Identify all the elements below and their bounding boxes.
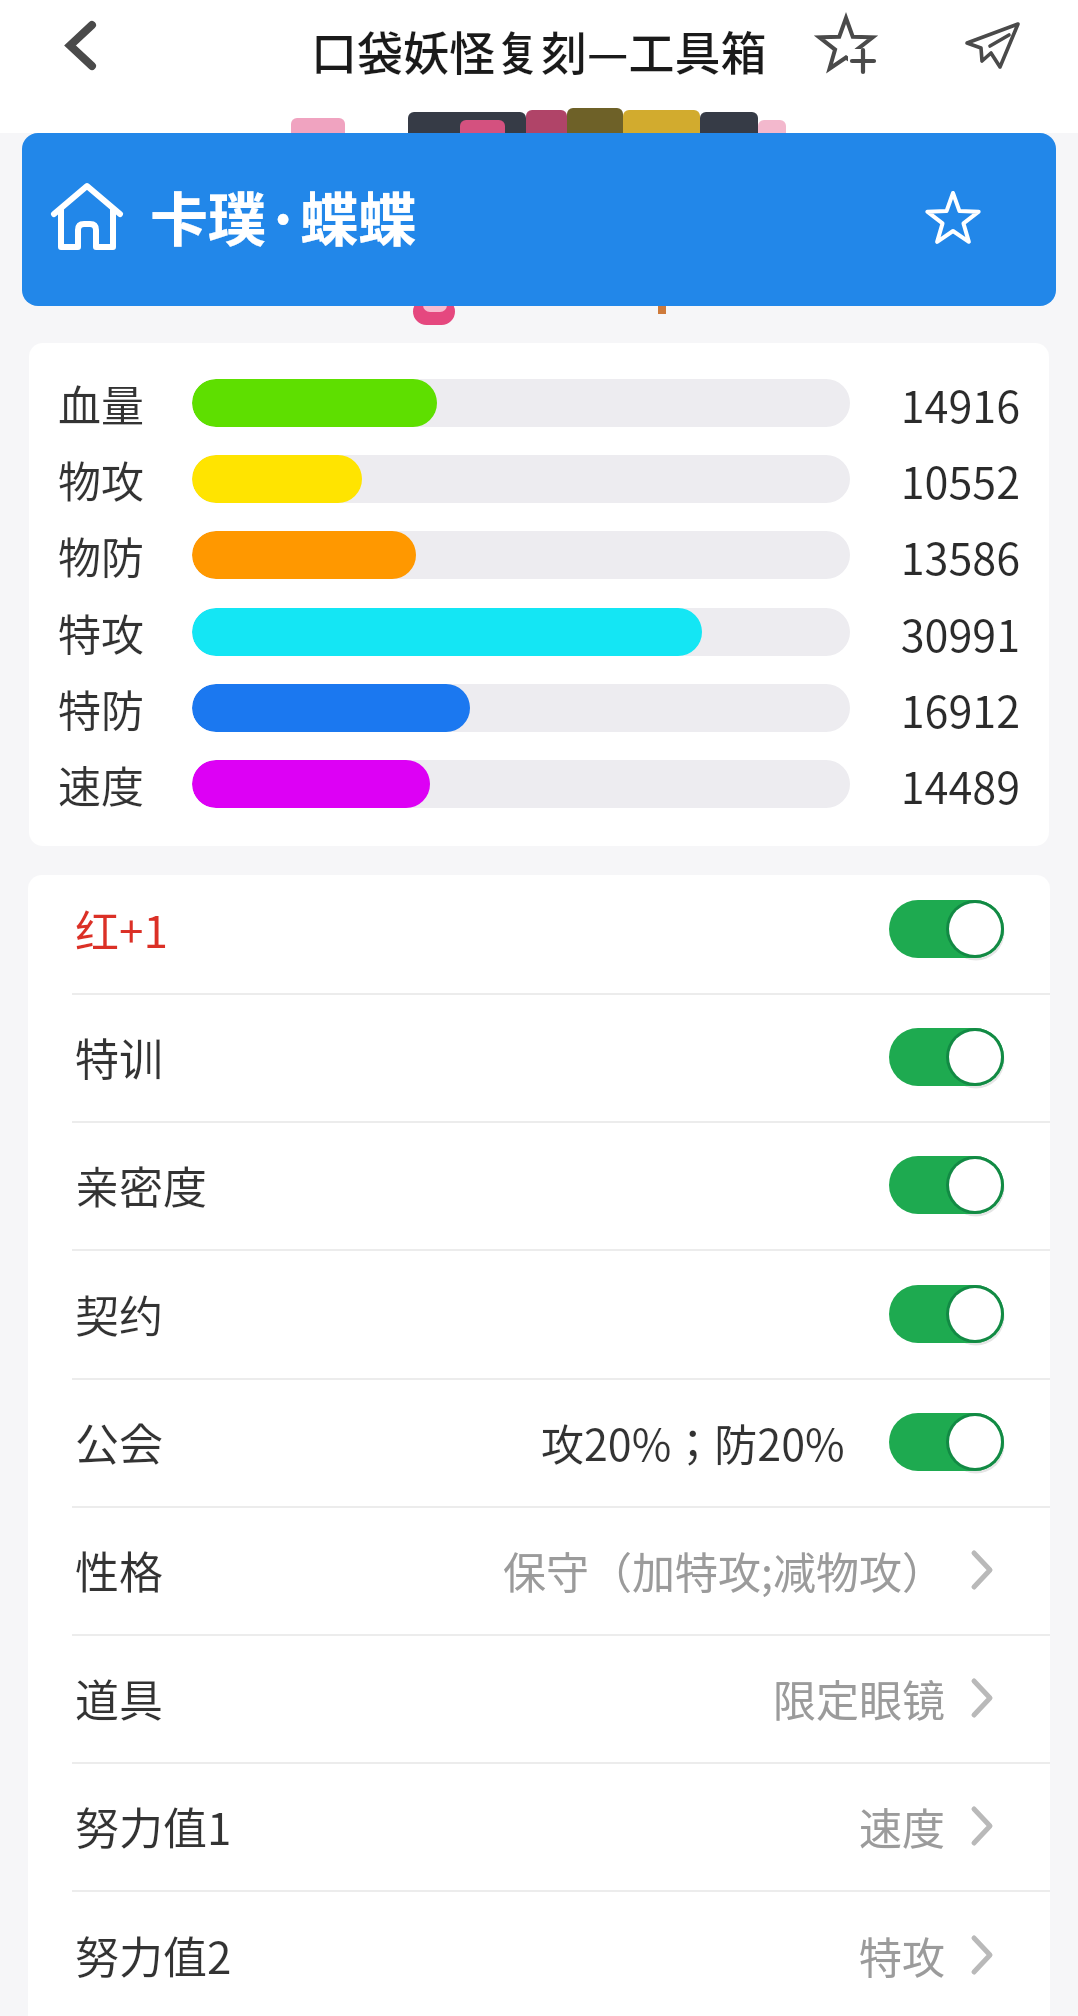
staticText: 14489 — [789, 754, 1020, 816]
staticText: 特防 — [58, 677, 144, 739]
button[interactable]: 契约 — [28, 1250, 1050, 1378]
button[interactable] — [889, 1156, 1004, 1214]
staticText: 13586 — [789, 525, 1020, 587]
staticText: 契约 — [75, 1282, 163, 1346]
staticText: 10552 — [789, 449, 1020, 511]
button[interactable] — [946, 4, 1036, 88]
staticText: 性格 — [75, 1538, 163, 1602]
staticText: 努力值2 — [75, 1923, 232, 1987]
staticText: 卡璞·蝶蝶 — [150, 174, 417, 258]
staticText: 14916 — [789, 373, 1020, 435]
button[interactable] — [808, 8, 908, 92]
staticText: 16912 — [789, 678, 1020, 740]
button[interactable] — [889, 1028, 1004, 1086]
button[interactable]: 性格 — [28, 1506, 1050, 1634]
staticText: 特训 — [75, 1025, 163, 1089]
button[interactable]: 努力值2 — [28, 1891, 1050, 2016]
staticText: 红+1 — [75, 897, 168, 961]
staticText: 速度 — [58, 753, 144, 815]
button[interactable] — [889, 900, 1004, 958]
button[interactable]: 亲密度 — [28, 1121, 1050, 1249]
staticText: 速度 — [859, 1795, 945, 1857]
staticText: 特攻 — [859, 1924, 945, 1986]
staticText: 30991 — [789, 602, 1020, 664]
button[interactable]: 特训 — [28, 993, 1050, 1121]
staticText: 公会 — [75, 1410, 163, 1474]
button[interactable]: 公会 — [28, 1378, 1050, 1506]
staticText: 亲密度 — [75, 1153, 207, 1217]
button[interactable]: 红+1 — [28, 875, 1050, 993]
staticText: 特攻 — [58, 601, 144, 663]
button[interactable] — [889, 1285, 1004, 1343]
staticText: 攻20%；防20% — [541, 1411, 845, 1473]
button[interactable] — [46, 10, 116, 86]
staticText: 口袋妖怪复刻—工具箱 — [311, 17, 767, 84]
staticText: 限定眼镜 — [773, 1667, 945, 1729]
button[interactable]: 卡璞·蝶蝶 — [22, 133, 1056, 306]
staticText: 血量 — [58, 372, 144, 434]
staticText: 努力值1 — [75, 1794, 232, 1858]
button[interactable]: 道具 — [28, 1634, 1050, 1762]
button[interactable]: 努力值1 — [28, 1762, 1050, 1890]
staticText: 物攻 — [58, 448, 144, 510]
staticText: 道具 — [75, 1666, 163, 1730]
staticText: 保守（加特攻;减物攻） — [503, 1539, 945, 1601]
staticText: 物防 — [58, 524, 144, 586]
button[interactable] — [889, 1413, 1004, 1471]
